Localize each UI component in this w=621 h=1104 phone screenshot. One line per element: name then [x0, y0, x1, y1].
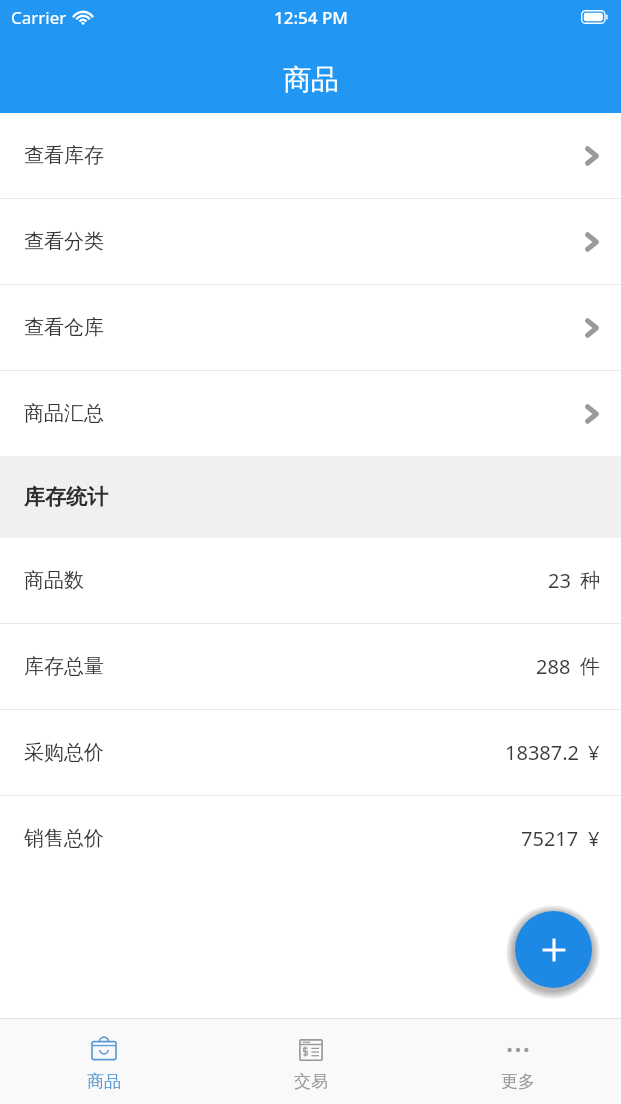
button[interactable]: 商品汇总: [0, 371, 621, 456]
staticText: 商品汇总: [24, 401, 104, 426]
staticText: 销售总价: [24, 826, 104, 851]
button[interactable]: 查看分类: [0, 199, 621, 284]
staticText: 商品数: [24, 568, 84, 593]
button[interactable]: 查看仓库: [0, 285, 621, 370]
button[interactable]: 商品数: [0, 538, 621, 623]
button[interactable]: 库存总量: [0, 624, 621, 709]
button[interactable]: Add: [515, 911, 592, 988]
staticText: 12:54 PM: [274, 6, 348, 29]
staticText: 件: [580, 654, 600, 679]
button[interactable]: 交易: [207, 1019, 414, 1104]
staticText: 更多: [501, 1071, 535, 1092]
staticText: Carrier: [11, 6, 67, 29]
staticText: 75217: [521, 825, 579, 852]
staticText: 查看仓库: [24, 315, 104, 340]
staticText: 商品: [283, 62, 339, 97]
staticText: ¥: [588, 739, 600, 766]
button[interactable]: 商品: [0, 1019, 207, 1104]
staticText: 查看库存: [24, 143, 104, 168]
button[interactable]: 采购总价: [0, 710, 621, 795]
staticText: 18387.2: [505, 739, 579, 766]
staticText: 商品: [87, 1071, 121, 1092]
staticText: 查看分类: [24, 229, 104, 254]
staticText: 交易: [294, 1071, 328, 1092]
staticText: ¥: [588, 825, 600, 852]
button[interactable]: 查看库存: [0, 113, 621, 198]
button[interactable]: 销售总价: [0, 796, 621, 881]
staticText: 288: [536, 653, 571, 680]
staticText: 采购总价: [24, 740, 104, 765]
staticText: 种: [580, 568, 600, 593]
button[interactable]: 更多: [414, 1019, 621, 1104]
staticText: 23: [548, 567, 571, 594]
staticText: 库存统计: [24, 484, 108, 510]
staticText: 库存总量: [24, 654, 104, 679]
